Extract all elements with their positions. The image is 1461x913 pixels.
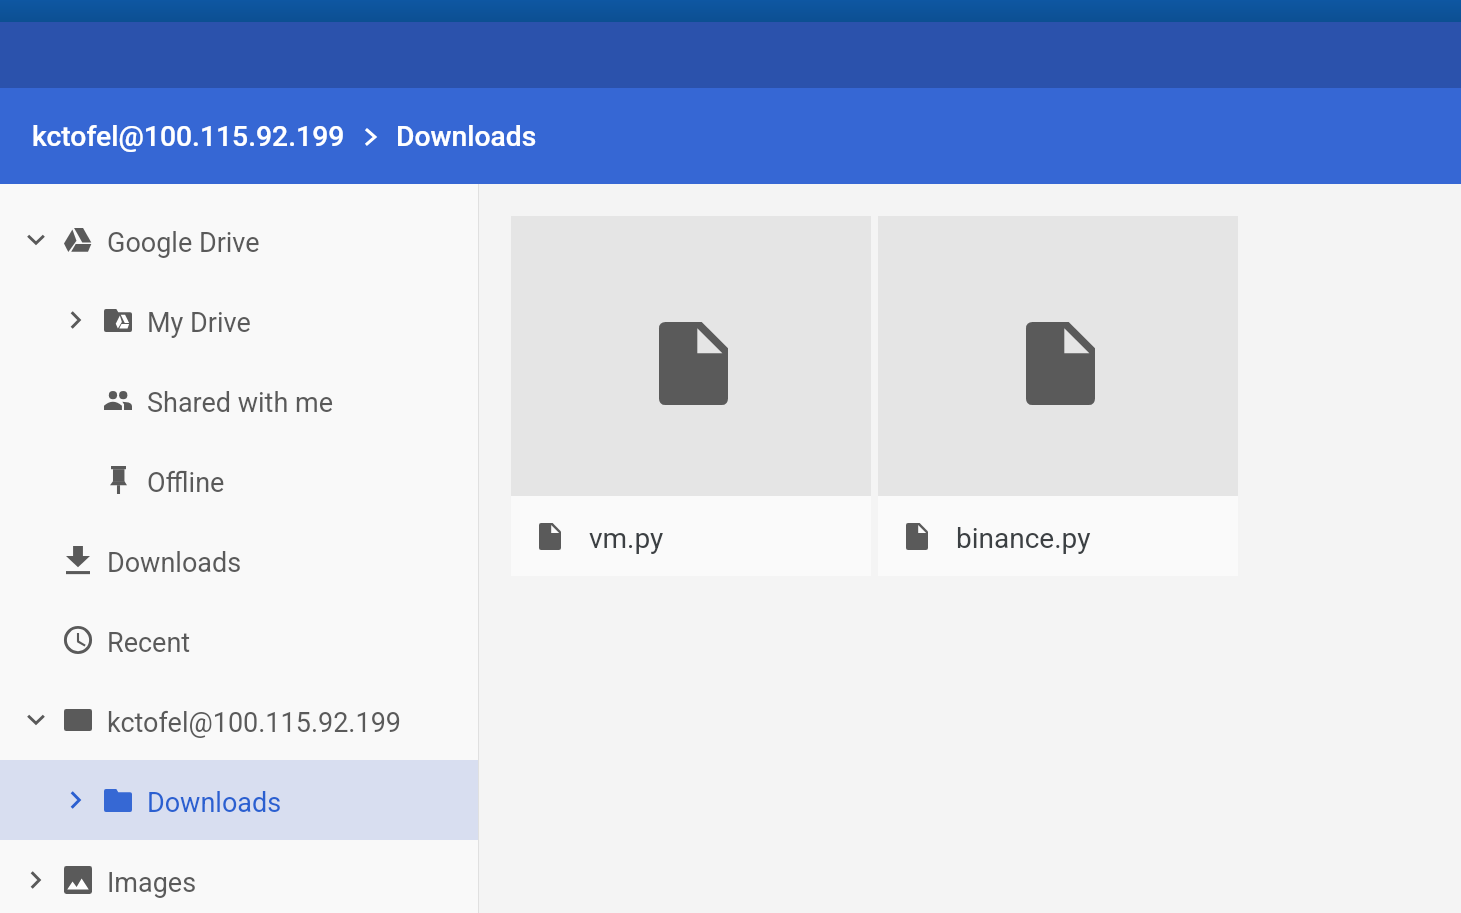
button[interactable]: Downloads — [0, 760, 478, 840]
staticText: Google Drive — [107, 227, 260, 259]
other: Breadcrumb separator — [367, 130, 375, 144]
button[interactable]: Offline — [0, 440, 478, 520]
button[interactable]: Shared with me — [0, 360, 478, 440]
button[interactable]: Downloads — [0, 520, 478, 600]
button[interactable]: binance.py — [878, 216, 1238, 576]
staticText: Recent — [107, 627, 191, 659]
staticText: Downloads — [147, 787, 282, 819]
button[interactable]: Google Drive — [0, 200, 478, 280]
staticText: Images — [107, 867, 197, 899]
button[interactable]: vm.py — [511, 216, 871, 576]
button[interactable]: Recent — [0, 600, 478, 680]
staticText: Offline — [147, 467, 225, 499]
button[interactable]: Downloads — [396, 120, 537, 153]
button[interactable]: Images — [0, 840, 478, 913]
staticText: kctofel@100.115.92.199 — [107, 707, 401, 739]
button[interactable]: kctofel@100.115.92.199 — [32, 120, 345, 153]
staticText: Downloads — [107, 547, 242, 579]
button[interactable]: My Drive — [0, 280, 478, 360]
staticText: Shared with me — [147, 387, 333, 419]
button[interactable]: kctofel@100.115.92.199 — [0, 680, 478, 760]
staticText: vm.py — [589, 522, 664, 555]
staticText: binance.py — [956, 522, 1091, 555]
staticText: My Drive — [147, 307, 251, 339]
